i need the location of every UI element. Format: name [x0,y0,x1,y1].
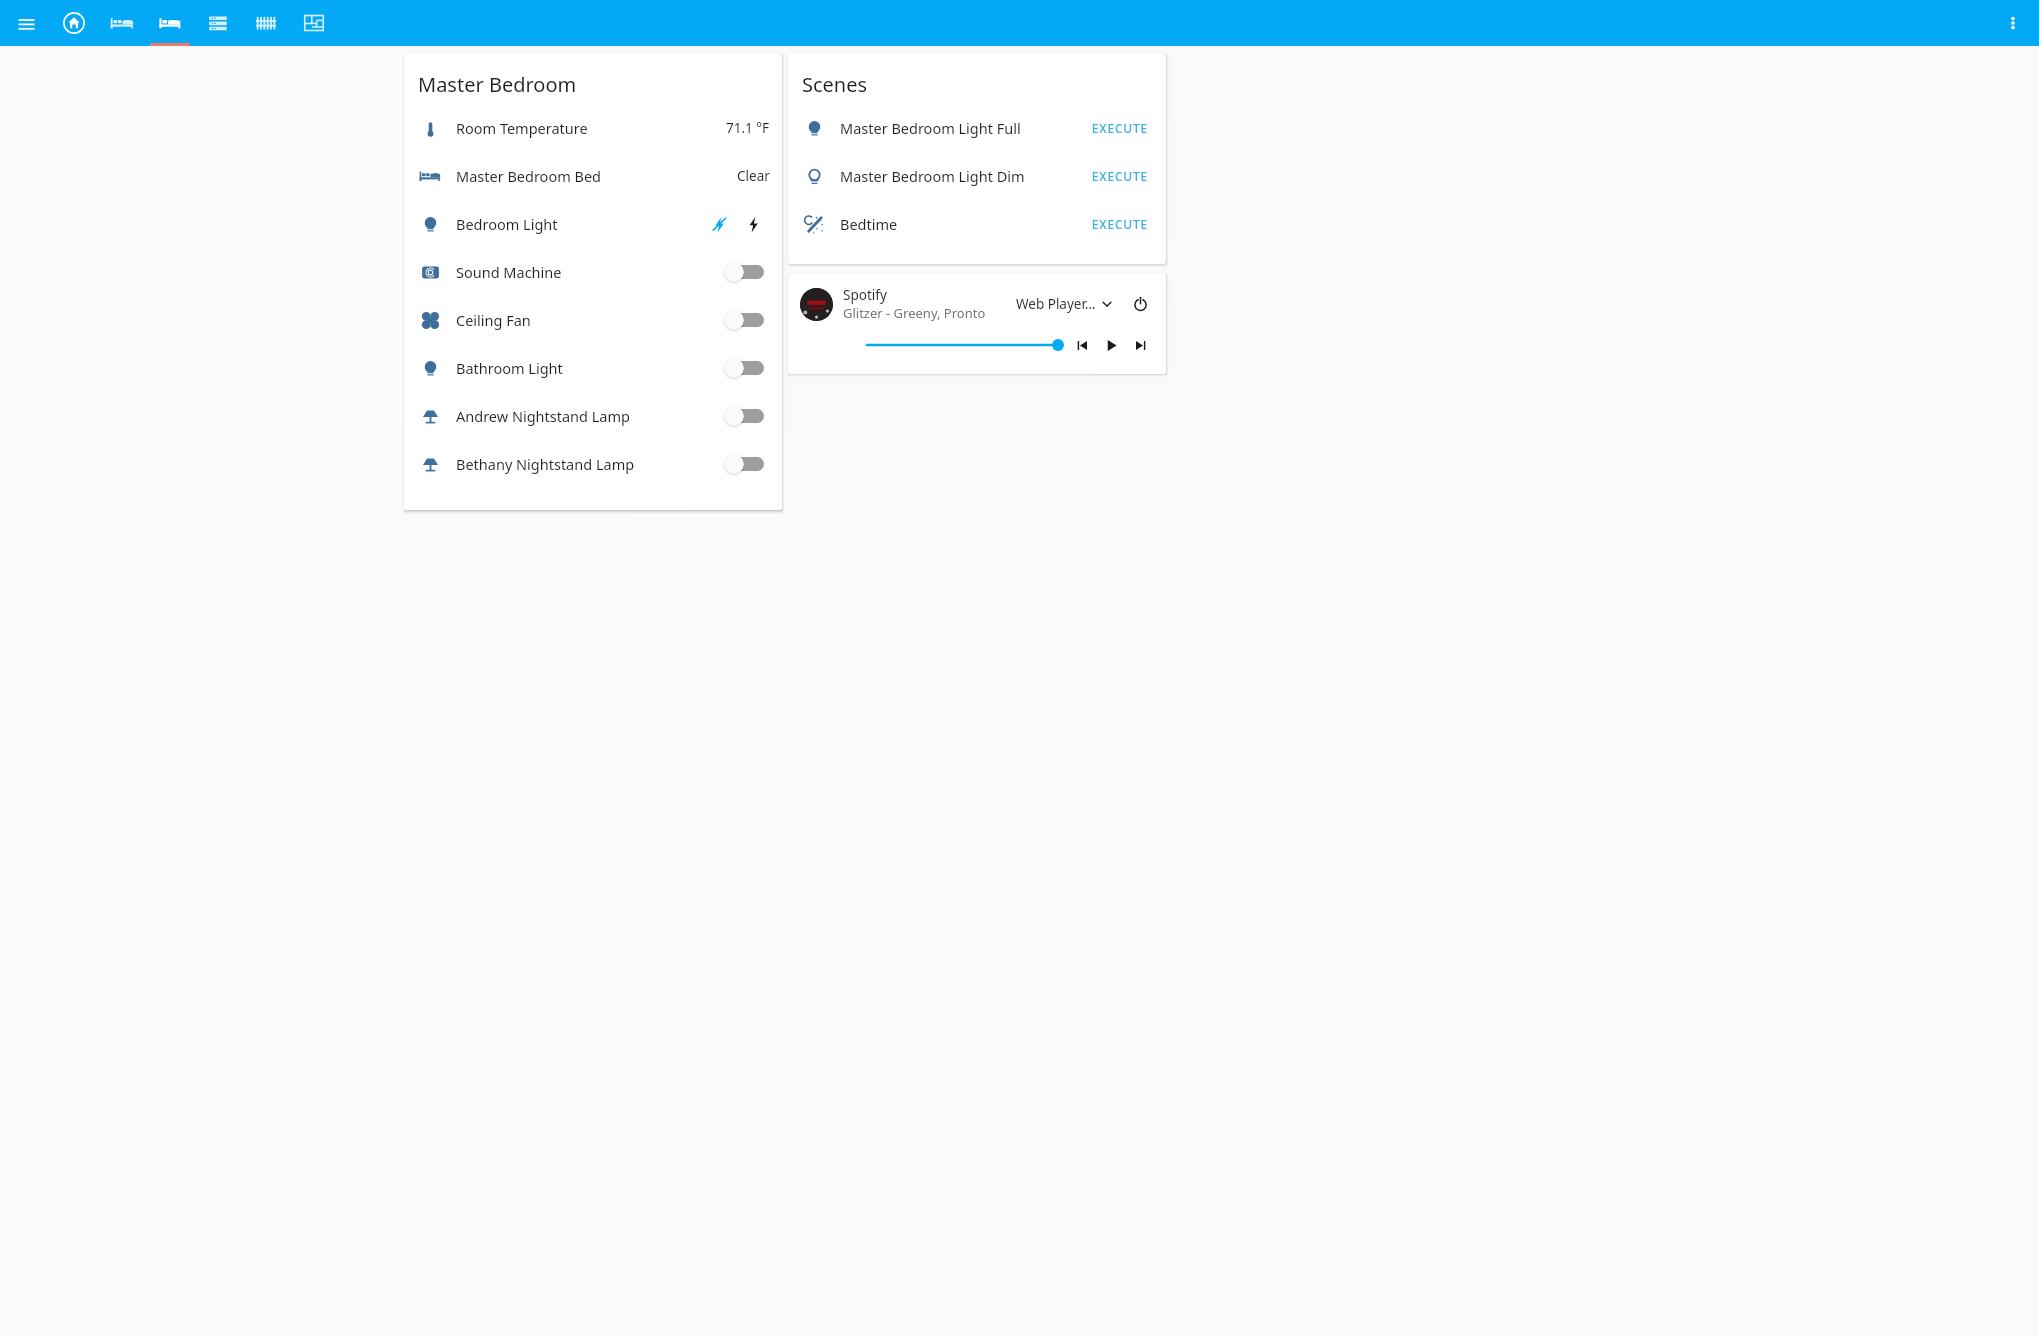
staticText: Master Bedroom Light Full [840,118,1085,138]
button[interactable]: Living room [98,0,146,46]
staticText: Web Player… [1016,295,1096,313]
staticText: 71.1 °F [726,119,770,137]
button[interactable]: EXECUTE [1085,114,1154,142]
button[interactable]: Master Bedroom Light Dim [788,152,1166,200]
staticText: Clear [737,167,770,185]
button[interactable]: Ceiling Fan [404,296,782,344]
staticText: Scenes [802,71,868,98]
staticText: Spotify [843,286,887,304]
button[interactable]: Flash on [736,207,770,241]
button[interactable]: Flash off [702,207,736,241]
staticText: Sound Machine [456,262,724,282]
staticText: Master Bedroom [418,71,577,98]
staticText: Glitzer - Greeny, Pronto [843,304,986,322]
button[interactable]: Toggle [724,449,770,479]
button[interactable]: Master Bedroom Light Full [788,104,1166,152]
button[interactable]: Bedroom [146,0,194,46]
staticText: Ceiling Fan [456,310,724,330]
button[interactable]: Master Bedroom Bed [404,152,782,200]
button[interactable]: Bedroom Light [404,200,782,248]
button[interactable]: Seek [866,336,1058,354]
staticText: EXECUTE [1091,120,1148,136]
button[interactable]: Next [1126,331,1154,359]
button[interactable]: More options [1993,3,2033,43]
button[interactable]: Bathroom Light [404,344,782,392]
staticText: Master Bedroom Light Dim [840,166,1085,186]
staticText: EXECUTE [1091,168,1148,184]
button[interactable]: Server [194,0,242,46]
button[interactable]: Menu [6,3,46,43]
button[interactable]: Web Player… [1014,291,1116,317]
button[interactable]: Play [1096,330,1126,360]
button[interactable]: EXECUTE [1085,210,1154,238]
staticText: Bathroom Light [456,358,724,378]
button[interactable]: Toggle [724,305,770,335]
staticText: Master Bedroom Bed [456,166,737,186]
button[interactable]: Toggle [724,401,770,431]
button[interactable]: Toggle [724,257,770,287]
button[interactable]: Home [50,0,98,46]
button[interactable]: Bethany Nightstand Lamp [404,440,782,488]
button[interactable]: Previous [1068,331,1096,359]
button[interactable]: Andrew Nightstand Lamp [404,392,782,440]
button[interactable]: Bedtime [788,200,1166,248]
staticText: Bedtime [840,214,1085,234]
staticText: EXECUTE [1091,216,1148,232]
button[interactable]: Toggle [724,353,770,383]
button[interactable]: Floor plan [290,0,338,46]
staticText: Bethany Nightstand Lamp [456,454,724,474]
button[interactable]: Room Temperature [404,104,782,152]
staticText: Andrew Nightstand Lamp [456,406,724,426]
button[interactable]: Sound Machine [404,248,782,296]
staticText: Bedroom Light [456,214,702,234]
button[interactable]: Yard [242,0,290,46]
button[interactable]: Power [1126,290,1154,318]
button[interactable]: EXECUTE [1085,162,1154,190]
staticText: Room Temperature [456,118,726,138]
